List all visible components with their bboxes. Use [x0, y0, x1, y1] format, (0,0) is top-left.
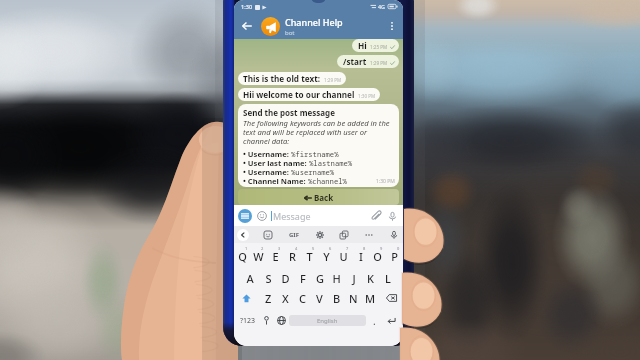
staticText: G	[316, 271, 324, 286]
button[interactable]: Back	[238, 189, 399, 205]
button[interactable]: S	[259, 265, 277, 287]
staticText: V	[316, 291, 323, 306]
button[interactable]: J	[345, 265, 362, 287]
staticText: 1:30 PM	[376, 178, 395, 185]
button[interactable]: More	[363, 229, 375, 241]
button[interactable]: English	[289, 315, 366, 326]
button[interactable]: B	[328, 287, 345, 309]
staticText: N	[349, 291, 358, 306]
staticText: E	[272, 249, 279, 264]
button[interactable]: K	[362, 265, 379, 287]
button[interactable]: N	[345, 287, 362, 309]
button[interactable]: 8	[352, 243, 369, 265]
button[interactable]: 2	[250, 243, 267, 265]
button[interactable]: Voice message	[385, 209, 399, 223]
staticText: .	[373, 314, 376, 328]
staticText: 5	[312, 246, 315, 251]
button[interactable]: Send the post message	[238, 104, 399, 187]
button[interactable]: F	[294, 265, 311, 287]
staticText: Send the post message	[243, 107, 335, 118]
button[interactable]: Hi	[352, 39, 399, 52]
button[interactable]: 0	[386, 243, 403, 265]
button[interactable]: 1	[234, 243, 250, 265]
button[interactable]: 9	[369, 243, 386, 265]
staticText: 1:29 PM	[370, 60, 388, 66]
staticText: S	[265, 271, 272, 286]
staticText: 8	[363, 246, 366, 251]
button[interactable]: 3	[267, 243, 284, 265]
staticText: 6	[329, 246, 332, 251]
staticText: 0	[397, 246, 400, 251]
button[interactable]: Bot commands	[238, 209, 252, 223]
staticText: A	[246, 271, 254, 286]
staticText: ?123	[240, 316, 256, 326]
button[interactable]: Z	[259, 287, 277, 309]
staticText: This is the old text:	[243, 73, 321, 84]
staticText: U	[339, 249, 348, 264]
button[interactable]: Emoji keyboard	[259, 309, 273, 332]
button[interactable]: 7	[335, 243, 352, 265]
button[interactable]: 5	[301, 243, 318, 265]
button[interactable]: Backspace	[379, 287, 403, 309]
staticText: %firstname%	[291, 149, 339, 158]
staticText: K	[367, 271, 374, 286]
button[interactable]: Hii welcome to our channel	[238, 88, 380, 101]
button[interactable]: 6	[318, 243, 335, 265]
staticText: 2	[261, 246, 264, 251]
button[interactable]: .	[366, 309, 382, 332]
staticText: 1:25 PM	[370, 44, 388, 50]
staticText: /start	[343, 56, 367, 67]
staticText: 1:30	[241, 3, 253, 11]
staticText: I	[359, 249, 363, 264]
staticText: 4G	[378, 3, 386, 10]
staticText: O	[373, 249, 382, 264]
staticText: %lastname%	[309, 158, 353, 167]
staticText: Y	[323, 249, 330, 264]
staticText: X	[282, 291, 289, 306]
button[interactable]: Back	[239, 18, 255, 34]
button[interactable]	[261, 17, 280, 36]
button[interactable]: Clipboard	[338, 229, 350, 241]
button[interactable]: A	[241, 265, 259, 287]
staticText: • Username:	[243, 149, 289, 158]
button[interactable]: Change language	[273, 309, 289, 332]
button[interactable]: Attach	[369, 209, 383, 223]
button[interactable]: Emoji	[255, 209, 268, 222]
staticText: 1:30 PM	[358, 93, 376, 99]
button[interactable]: L	[379, 265, 396, 287]
staticText: • User last name:	[243, 158, 307, 167]
button[interactable]: H	[328, 265, 345, 287]
staticText: P	[391, 249, 398, 264]
button[interactable]: G	[311, 265, 328, 287]
button[interactable]: 4	[284, 243, 301, 265]
staticText: C	[299, 291, 306, 306]
button[interactable]: D	[277, 265, 294, 287]
staticText: GIF	[289, 231, 299, 239]
button[interactable]: V	[311, 287, 328, 309]
staticText: Back	[314, 192, 334, 203]
staticText: The following keywords can be added in t…	[243, 118, 395, 146]
staticText: F	[300, 271, 306, 286]
button[interactable]: M	[362, 287, 379, 309]
staticText: H	[332, 271, 341, 286]
button[interactable]: More options	[384, 18, 400, 34]
button[interactable]: /start	[337, 55, 399, 68]
button[interactable]: C	[294, 287, 311, 309]
staticText: R	[289, 249, 296, 264]
button[interactable]: Shift	[234, 287, 259, 309]
staticText: Channel Help	[285, 16, 343, 28]
staticText: • Username:	[243, 167, 289, 176]
button[interactable]: Expand toolbar	[237, 229, 249, 241]
button[interactable]: Settings	[314, 229, 326, 241]
button[interactable]: Voice input	[388, 229, 400, 241]
button[interactable]: Stickers	[262, 229, 274, 241]
staticText: 1:29 PM	[324, 77, 342, 83]
button[interactable]: X	[277, 287, 294, 309]
staticText: Message	[273, 210, 369, 222]
button[interactable]: Enter	[382, 309, 400, 332]
staticText: Hii welcome to our channel	[243, 89, 355, 100]
staticText: English	[317, 317, 338, 325]
button[interactable]: ?123	[237, 309, 259, 332]
button[interactable]: GIF	[287, 229, 301, 241]
button[interactable]: This is the old text:	[238, 72, 346, 85]
